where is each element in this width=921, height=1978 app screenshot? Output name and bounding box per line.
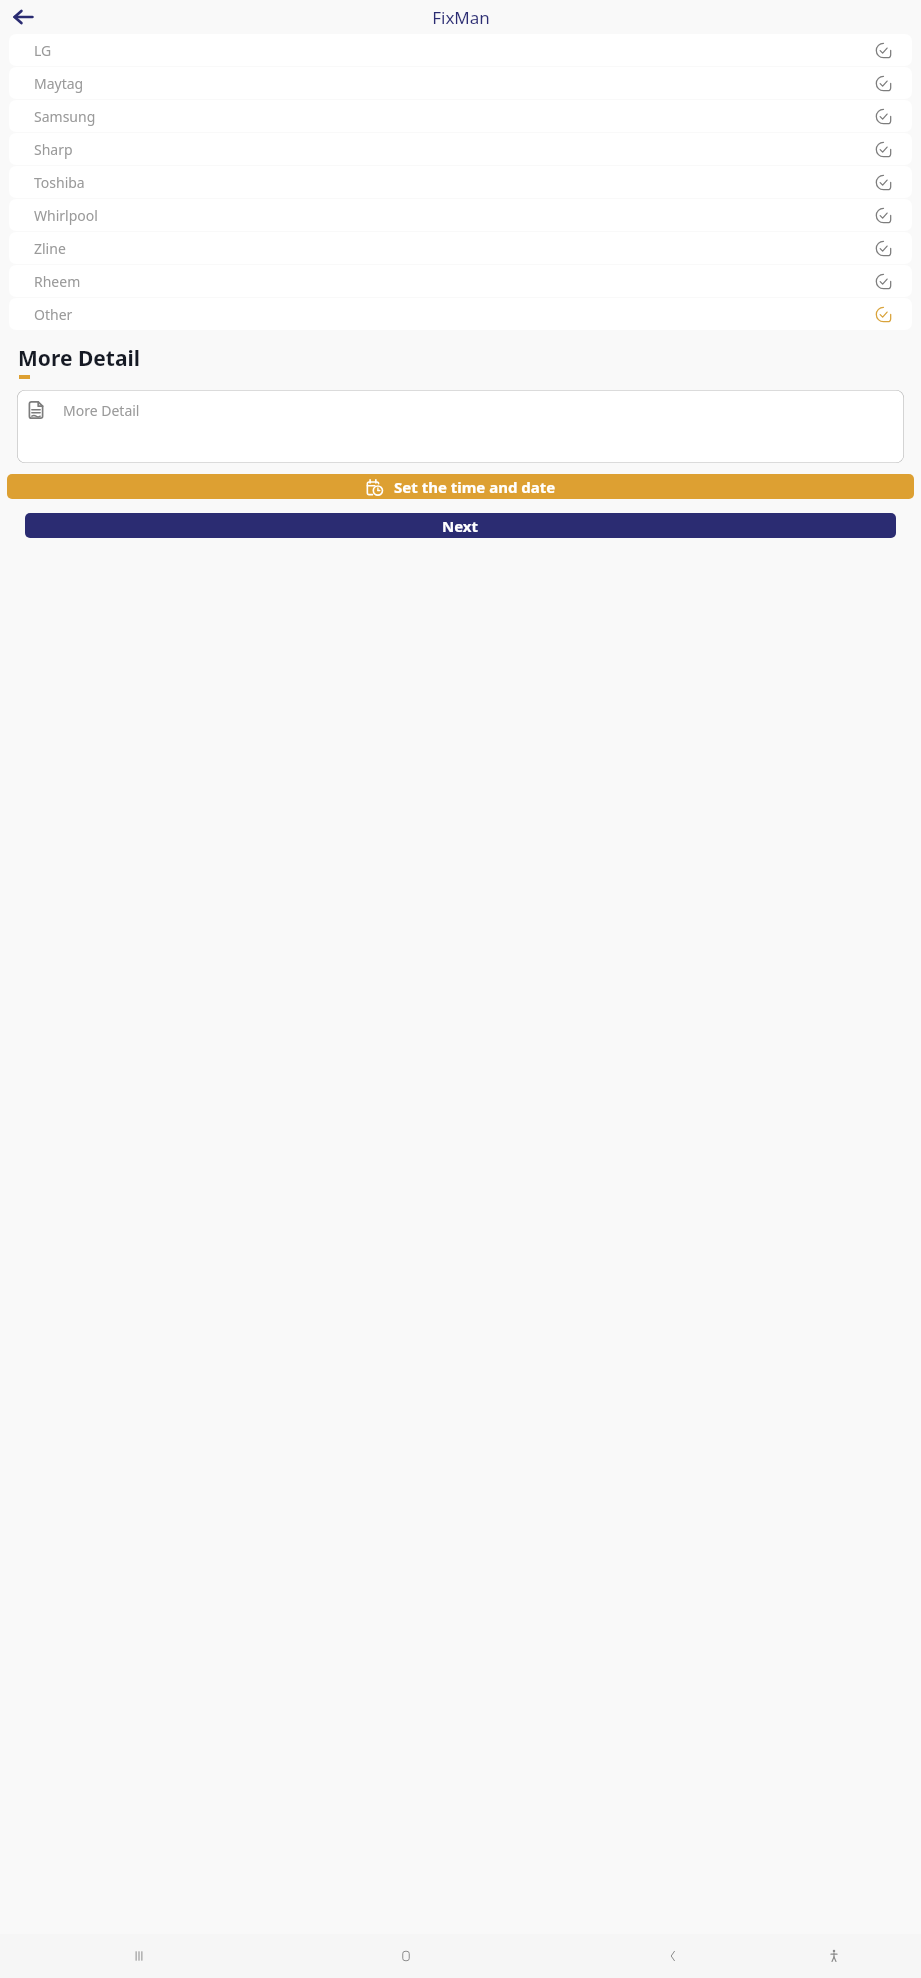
button[interactable]: Maytag bbox=[9, 67, 912, 99]
button[interactable]: Back bbox=[7, 1, 39, 33]
staticText: Toshiba bbox=[34, 173, 875, 192]
staticText: Whirlpool bbox=[34, 206, 875, 225]
button[interactable]: Other bbox=[9, 298, 912, 330]
button[interactable]: Sharp bbox=[9, 133, 912, 165]
staticText: FixMan bbox=[432, 6, 490, 29]
staticText: Next bbox=[442, 516, 479, 536]
button[interactable]: More Detail bbox=[17, 390, 904, 463]
staticText: Samsung bbox=[34, 107, 875, 126]
staticText: Sharp bbox=[34, 140, 875, 159]
staticText: Rheem bbox=[34, 272, 875, 291]
button[interactable]: Whirlpool bbox=[9, 199, 912, 231]
button[interactable]: Back bbox=[657, 1940, 689, 1972]
button[interactable]: Home bbox=[390, 1940, 422, 1972]
staticText: More Detail bbox=[63, 401, 140, 420]
button[interactable]: LG bbox=[9, 34, 912, 66]
staticText: LG bbox=[34, 41, 875, 60]
staticText: More Detail bbox=[18, 344, 141, 373]
button[interactable]: Next bbox=[25, 513, 896, 538]
staticText: Other bbox=[34, 305, 875, 324]
button[interactable]: Toshiba bbox=[9, 166, 912, 198]
button[interactable]: Samsung bbox=[9, 100, 912, 132]
staticText: Set the time and date bbox=[394, 477, 556, 497]
button[interactable]: Accessibility bbox=[818, 1940, 850, 1972]
button[interactable]: Recent apps bbox=[123, 1940, 155, 1972]
staticText: Maytag bbox=[34, 74, 875, 93]
button[interactable]: Rheem bbox=[9, 265, 912, 297]
button[interactable]: Zline bbox=[9, 232, 912, 264]
button[interactable]: Set the time and date bbox=[7, 474, 914, 499]
staticText: Zline bbox=[34, 239, 875, 258]
